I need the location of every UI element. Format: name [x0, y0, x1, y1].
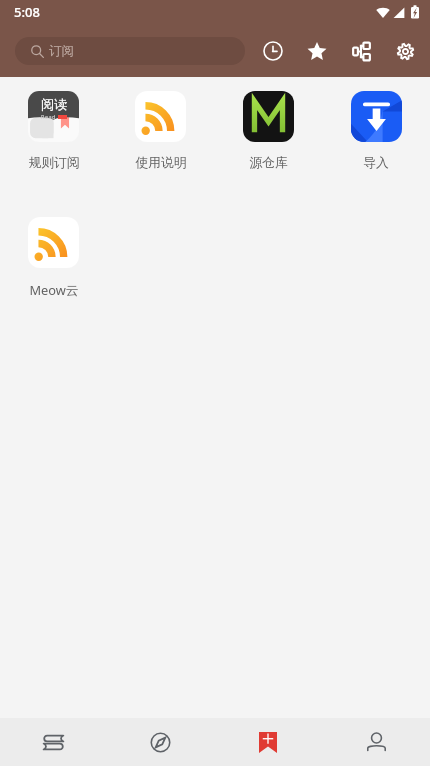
- staticText: 源仓库: [249, 155, 288, 171]
- button[interactable]: 订阅: [15, 37, 245, 65]
- staticText: 5:08: [14, 3, 40, 21]
- button[interactable]: 阅读: [0, 91, 107, 171]
- staticText: 阅读: [41, 96, 67, 112]
- staticText: 导入: [363, 155, 389, 171]
- button[interactable]: History: [251, 31, 295, 71]
- button[interactable]: 源仓库: [214, 91, 322, 171]
- button[interactable]: Source manage: [339, 31, 383, 71]
- staticText: Read: [41, 113, 56, 120]
- button[interactable]: Bookshelf: [0, 718, 107, 766]
- button[interactable]: 使用说明: [107, 91, 214, 171]
- button[interactable]: Subscribe: [214, 718, 322, 766]
- button[interactable]: Meow云: [0, 217, 107, 298]
- button[interactable]: Settings: [383, 31, 427, 71]
- button[interactable]: 导入: [322, 91, 430, 171]
- button[interactable]: Favorites: [295, 31, 339, 71]
- staticText: 订阅: [49, 43, 74, 59]
- staticText: 使用说明: [135, 155, 187, 171]
- staticText: 规则订阅: [28, 155, 80, 171]
- button[interactable]: Explore: [107, 718, 214, 766]
- staticText: Meow云: [29, 281, 79, 298]
- button[interactable]: Profile: [322, 718, 430, 766]
